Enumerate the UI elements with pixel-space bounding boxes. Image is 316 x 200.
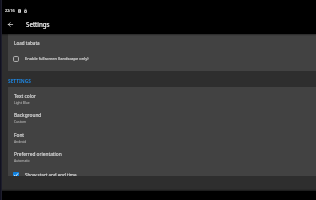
staticText: Load tabata [14, 40, 40, 46]
staticText: 22:16 [5, 8, 15, 13]
staticText: Text color [14, 93, 36, 100]
staticText: Enable fullscreen (landscape only) [25, 56, 89, 61]
staticText: Automatic [14, 158, 30, 162]
staticText: Preferred orientation [14, 151, 62, 158]
button[interactable]: Preferred orientation [8, 145, 316, 164]
button[interactable]: Back [0, 14, 20, 34]
button[interactable]: Show start and end time [8, 169, 316, 176]
button[interactable]: Enable fullscreen (landscape only) [8, 51, 316, 66]
staticText: Font [14, 132, 25, 139]
button[interactable]: Background [8, 106, 316, 125]
staticText: Settings [26, 20, 50, 28]
staticText: Light Blue [14, 100, 30, 104]
staticText: Background [14, 112, 42, 119]
button[interactable]: Text color [8, 87, 316, 106]
staticText: Custom [14, 119, 26, 123]
button[interactable]: Font [8, 126, 316, 145]
staticText: Android [14, 139, 27, 143]
button[interactable]: Load tabata [8, 34, 316, 52]
staticText: Show start and end time [25, 172, 77, 176]
staticText: SETTINGS [8, 78, 31, 85]
